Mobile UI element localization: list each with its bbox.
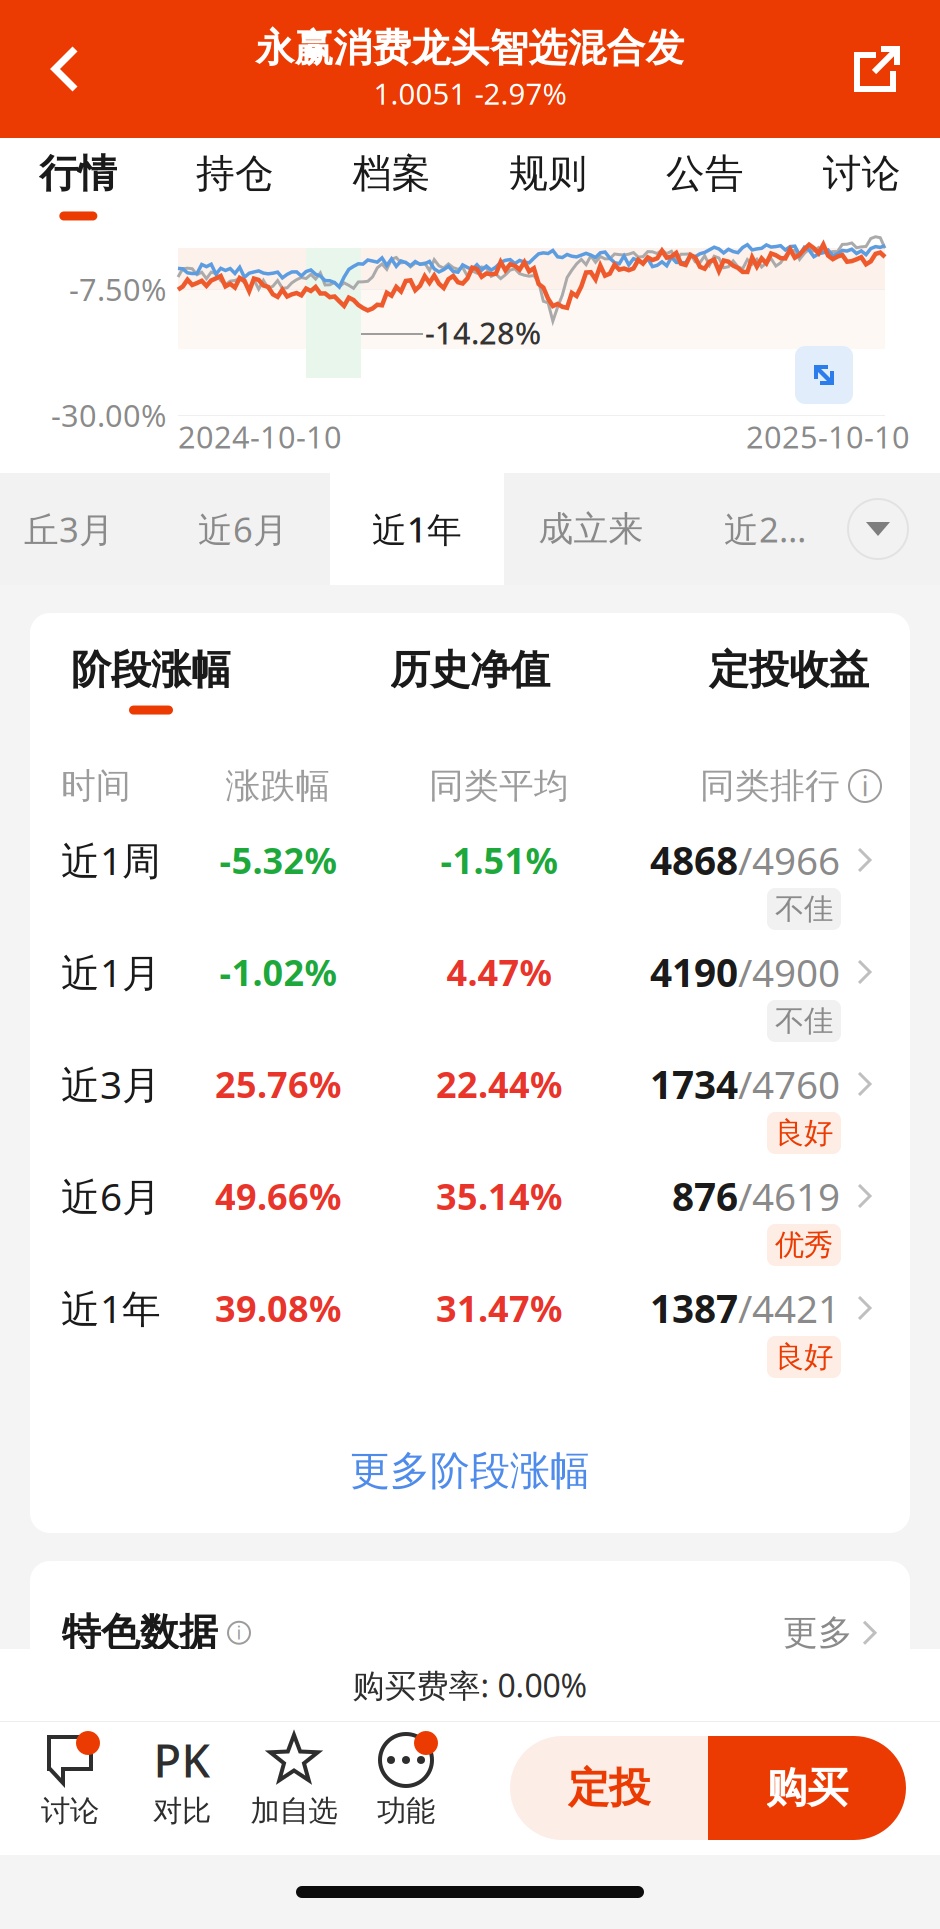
button[interactable]: 功能 bbox=[350, 1721, 462, 1855]
staticText: 31.47% bbox=[436, 1284, 562, 1332]
staticText: 1387 bbox=[650, 1282, 738, 1334]
button[interactable]: 档案 bbox=[313, 138, 470, 248]
button[interactable]: 近3月 bbox=[30, 1053, 910, 1165]
staticText: 良好 bbox=[775, 1115, 833, 1151]
staticText: /4760 bbox=[738, 1058, 840, 1110]
staticText: 近3月 bbox=[61, 1058, 161, 1110]
staticText: 加自选 bbox=[250, 1793, 337, 1829]
button[interactable]: 近6月 bbox=[30, 1165, 910, 1277]
staticText: /4966 bbox=[738, 834, 840, 886]
staticText: 涨跌幅 bbox=[225, 765, 330, 807]
staticText: 讨论 bbox=[823, 150, 901, 197]
staticText: -5.32% bbox=[219, 836, 336, 884]
button[interactable]: More periods bbox=[830, 473, 926, 585]
staticText: 近2… bbox=[724, 506, 806, 552]
button[interactable]: 近2… bbox=[678, 473, 852, 585]
button[interactable]: Fullscreen chart bbox=[789, 340, 859, 410]
staticText: 规则 bbox=[509, 150, 587, 197]
staticText: 成立来 bbox=[538, 508, 643, 550]
staticText: 历史净值 bbox=[390, 645, 550, 694]
button[interactable]: 规则 bbox=[470, 138, 627, 248]
staticText: 档案 bbox=[353, 150, 431, 197]
button[interactable]: 丘3月 bbox=[0, 473, 156, 585]
staticText: 35.14% bbox=[436, 1172, 562, 1220]
staticText: 近1月 bbox=[61, 946, 161, 998]
staticText: 不佳 bbox=[775, 1003, 833, 1039]
button[interactable]: 近6月 bbox=[156, 473, 330, 585]
staticText: 近6月 bbox=[198, 506, 288, 552]
button[interactable]: 成立来 bbox=[504, 473, 678, 585]
staticText: 近1周 bbox=[61, 834, 161, 886]
staticText: 良好 bbox=[775, 1339, 833, 1375]
button[interactable]: 近1年 bbox=[30, 1277, 910, 1389]
button[interactable]: 加自选 bbox=[238, 1721, 350, 1855]
button[interactable]: Share bbox=[814, 0, 940, 138]
staticText: 特色数据 bbox=[62, 1609, 218, 1656]
button[interactable]: 更多阶段涨幅 bbox=[30, 1389, 910, 1513]
staticText: 丘3月 bbox=[24, 506, 114, 552]
staticText: 定投 bbox=[568, 1763, 650, 1813]
button[interactable]: PK bbox=[126, 1721, 238, 1855]
staticText: 更多阶段涨幅 bbox=[350, 1446, 590, 1495]
button[interactable]: 公告 bbox=[627, 138, 783, 248]
staticText: 时间 bbox=[61, 765, 131, 807]
button[interactable]: 讨论 bbox=[783, 138, 940, 248]
staticText: 购买费率: 0.00% bbox=[352, 1664, 587, 1706]
button[interactable]: 讨论 bbox=[14, 1721, 126, 1855]
staticText: 同类平均 bbox=[429, 765, 569, 807]
staticText: -1.51% bbox=[440, 836, 557, 884]
staticText: i bbox=[236, 1620, 241, 1645]
staticText: /4421 bbox=[738, 1282, 840, 1334]
button[interactable]: 近1月 bbox=[30, 941, 910, 1053]
staticText: 讨论 bbox=[41, 1793, 99, 1829]
staticText: 39.08% bbox=[215, 1284, 341, 1332]
staticText: 2024-10-10 bbox=[178, 416, 342, 457]
button[interactable]: 近1年 bbox=[330, 473, 504, 585]
staticText: 1.0051 -2.97% bbox=[373, 74, 566, 113]
staticText: 4.47% bbox=[446, 948, 551, 996]
staticText: 行情 bbox=[39, 150, 117, 197]
staticText: /4900 bbox=[738, 946, 840, 998]
button[interactable]: 近1周 bbox=[30, 829, 910, 941]
staticText: 近1年 bbox=[61, 1282, 161, 1334]
button[interactable]: 定投 bbox=[510, 1736, 708, 1840]
staticText: 2025-10-10 bbox=[746, 416, 910, 457]
staticText: 对比 bbox=[153, 1793, 211, 1829]
staticText: /4619 bbox=[738, 1170, 840, 1222]
staticText: 功能 bbox=[377, 1793, 435, 1829]
staticText: -14.28% bbox=[425, 312, 541, 353]
staticText: 4190 bbox=[650, 946, 738, 998]
staticText: -30.00% bbox=[51, 395, 166, 435]
button[interactable]: 阶段涨幅 bbox=[30, 641, 272, 719]
staticText: 购买 bbox=[766, 1763, 848, 1813]
staticText: 同类排行 bbox=[700, 765, 840, 807]
staticText: 定投收益 bbox=[709, 645, 869, 694]
staticText: 持仓 bbox=[196, 150, 274, 197]
staticText: 876 bbox=[672, 1170, 738, 1222]
button[interactable]: 历史净值 bbox=[272, 641, 668, 719]
staticText: 永赢消费龙头智选混合发 bbox=[255, 24, 684, 72]
staticText: 4868 bbox=[650, 834, 738, 886]
button[interactable]: 持仓 bbox=[157, 138, 313, 248]
button[interactable]: 购买 bbox=[708, 1736, 906, 1840]
button[interactable]: 行情 bbox=[0, 138, 157, 248]
staticText: -1.02% bbox=[219, 948, 336, 996]
staticText: -7.50% bbox=[69, 269, 166, 309]
staticText: 优秀 bbox=[775, 1227, 833, 1263]
staticText: i bbox=[861, 767, 868, 804]
staticText: 22.44% bbox=[436, 1060, 562, 1108]
button[interactable]: Back bbox=[0, 0, 130, 138]
staticText: 近1年 bbox=[372, 506, 462, 552]
staticText: 不佳 bbox=[775, 891, 833, 927]
staticText: 公告 bbox=[666, 150, 744, 197]
staticText: 49.66% bbox=[215, 1172, 341, 1220]
staticText: 1734 bbox=[650, 1058, 738, 1110]
staticText: 近6月 bbox=[61, 1170, 161, 1222]
staticText: PK bbox=[153, 1730, 210, 1790]
staticText: 更多 bbox=[783, 1611, 853, 1654]
staticText: 25.76% bbox=[215, 1060, 341, 1108]
button[interactable]: 定投收益 bbox=[668, 641, 910, 719]
staticText: 阶段涨幅 bbox=[71, 645, 231, 694]
